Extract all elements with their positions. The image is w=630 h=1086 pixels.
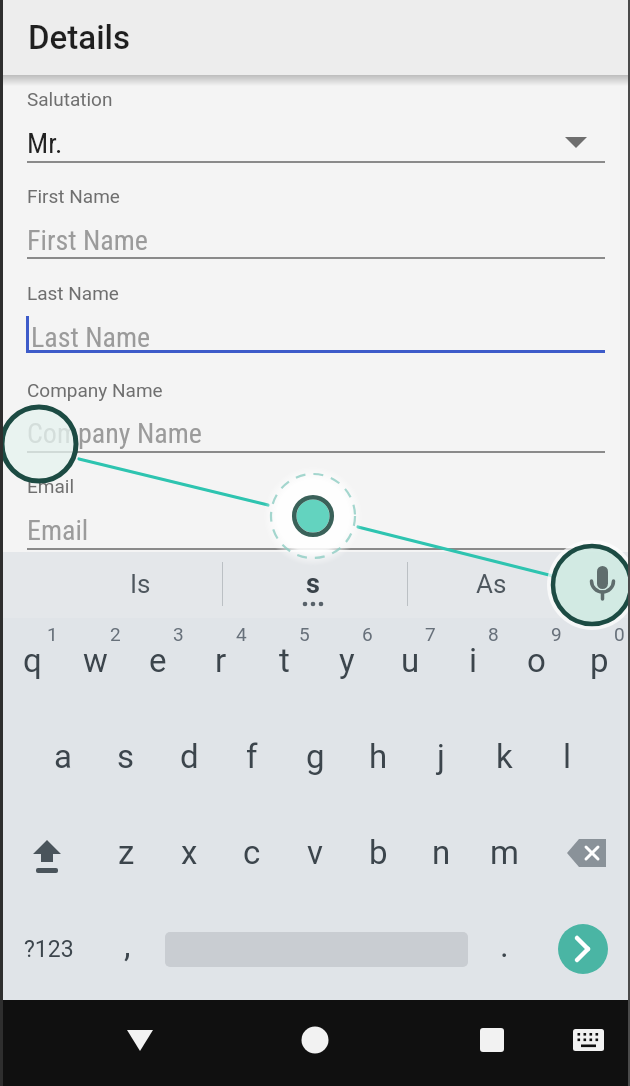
staticText: 2 [110,623,121,645]
button[interactable]: m [473,805,535,899]
button[interactable]: Mr. [27,124,427,162]
button[interactable]: f [221,709,283,803]
staticText: t [279,641,290,680]
button[interactable] [110,1010,170,1070]
staticText: Details [28,18,131,57]
button[interactable]: Last Name [31,318,431,356]
staticText: Email [27,475,75,497]
staticText: Company Name [27,417,202,450]
staticText: First Name [27,224,148,257]
staticText: n [432,833,451,872]
staticText: Last Name [31,321,151,354]
staticText: 8 [488,623,499,645]
button[interactable]: c [221,805,283,899]
staticText: h [369,737,388,776]
button[interactable]: First Name [27,221,427,259]
staticText: 5 [299,623,310,645]
staticText: p [590,641,609,680]
button[interactable]: s [95,709,157,803]
button[interactable]: h [347,709,409,803]
staticText: Salutation [27,88,113,110]
staticText: Last Name [27,282,119,304]
button[interactable] [553,810,619,896]
staticText: j [437,737,445,776]
button[interactable]: t [253,613,315,707]
staticText: y [339,641,355,680]
staticText: As [476,569,507,599]
button[interactable] [462,1010,522,1070]
staticText: e [149,641,167,680]
staticText: 7 [425,623,436,645]
button[interactable]: Details [0,0,630,75]
button[interactable]: j [410,709,472,803]
button[interactable]: Is [80,560,200,608]
button[interactable]: s [253,560,373,608]
button[interactable]: b [347,805,409,899]
staticText: m [490,833,519,872]
button[interactable]: e [127,613,189,707]
button[interactable]: v [284,805,346,899]
button[interactable]: y [316,613,378,707]
button[interactable]: Email [27,511,427,549]
button[interactable] [285,1010,345,1070]
button[interactable] [558,924,608,974]
staticText: a [54,737,72,776]
staticText: d [180,737,199,776]
staticText: 4 [236,623,247,645]
staticText: x [181,833,198,872]
button[interactable]: g [284,709,346,803]
button[interactable]: ?123 [18,925,80,973]
button[interactable]: q [1,613,63,707]
button[interactable]: r [190,613,252,707]
staticText: c [243,833,261,872]
staticText: q [23,641,42,680]
staticText: Mr. [27,127,63,160]
button[interactable]: p [568,613,630,707]
button[interactable]: x [158,805,220,899]
button[interactable] [14,810,80,896]
button[interactable]: k [473,709,535,803]
staticText: . [500,926,509,965]
staticText: w [83,641,108,680]
button[interactable]: u [379,613,441,707]
staticText: Company Name [27,379,163,401]
staticText: s [117,737,135,776]
button[interactable]: i [442,613,504,707]
button[interactable]: Company Name [27,414,427,452]
staticText: Email [27,514,89,547]
staticText: ?123 [24,936,74,963]
staticText: z [118,833,135,872]
staticText: 3 [173,623,184,645]
button[interactable]: d [158,709,220,803]
staticText: g [306,737,325,776]
staticText: First Name [27,185,120,207]
button[interactable]: . [473,898,535,992]
staticText: 6 [362,623,373,645]
staticText: k [496,737,513,776]
staticText: 9 [551,623,562,645]
staticText: l [563,737,572,776]
staticText: f [246,737,258,776]
staticText: v [307,833,323,872]
button[interactable]: a [32,709,94,803]
staticText: s [306,568,320,600]
staticText: 1 [47,623,58,645]
button[interactable]: w [64,613,126,707]
staticText: 0 [614,623,625,645]
button[interactable]: o [505,613,567,707]
button[interactable]: As [431,560,551,608]
staticText: Is [130,569,151,599]
staticText: b [369,833,388,872]
button[interactable]: z [95,805,157,899]
button[interactable]: l [536,709,598,803]
staticText: o [527,641,546,680]
button[interactable]: , [96,898,158,992]
button[interactable]: n [410,805,472,899]
staticText: i [469,641,478,680]
button[interactable] [558,1010,618,1070]
staticText: u [401,641,420,680]
button[interactable] [552,546,630,624]
staticText: , [124,926,131,965]
staticText: r [215,641,227,680]
